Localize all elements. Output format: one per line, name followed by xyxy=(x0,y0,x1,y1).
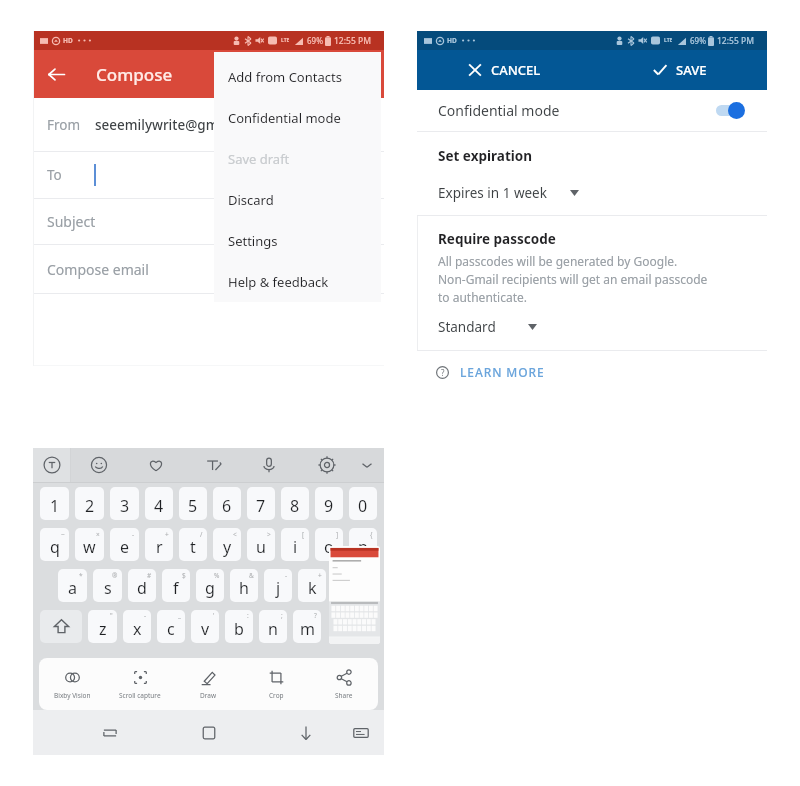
staticText: ; xyxy=(281,611,283,620)
staticText: w xyxy=(83,536,96,558)
button[interactable]: Help & feedback xyxy=(228,261,381,302)
staticText: 1 xyxy=(50,495,60,517)
staticText: d xyxy=(137,577,147,599)
button[interactable]: 0 xyxy=(349,487,377,520)
button[interactable]: Scroll capture xyxy=(106,658,174,710)
button[interactable]: 8 xyxy=(281,487,309,520)
staticText: Bixby Vision xyxy=(54,691,91,700)
button[interactable]: { xyxy=(349,528,377,561)
button[interactable]: 1 xyxy=(40,487,69,520)
staticText: Set expiration xyxy=(438,147,532,165)
staticText: All passcodes will be generated by Googl… xyxy=(438,253,678,269)
button[interactable]: square xyxy=(191,710,227,755)
button[interactable]: × xyxy=(75,528,104,561)
button[interactable]: gear xyxy=(310,448,344,482)
button[interactable]: Shift xyxy=(40,610,82,643)
button[interactable]: CANCEL xyxy=(417,50,592,90)
button[interactable]: 4 xyxy=(145,487,173,520)
button[interactable]: Expires in 1 week xyxy=(417,182,589,204)
button[interactable]: 6 xyxy=(213,487,241,520)
button[interactable]: $ xyxy=(162,569,190,602)
button[interactable]: ; xyxy=(259,610,287,643)
button[interactable]: ? xyxy=(293,610,321,643)
staticText: b xyxy=(234,618,244,640)
button[interactable]: 5 xyxy=(179,487,207,520)
button[interactable]: Settings xyxy=(228,220,381,261)
staticText: y xyxy=(223,536,232,558)
button[interactable]: mic xyxy=(252,448,286,482)
button[interactable]: [ xyxy=(281,528,309,561)
button[interactable]: + xyxy=(298,569,326,602)
staticText: [ xyxy=(302,530,305,539)
button[interactable]: chev xyxy=(350,448,384,482)
staticText: CANCEL xyxy=(491,61,541,79)
button[interactable]: SAVE xyxy=(592,50,767,90)
button[interactable]: : xyxy=(225,610,253,643)
button[interactable]: down xyxy=(288,710,324,755)
button[interactable]: Confidential mode xyxy=(228,97,381,138)
button[interactable]: < xyxy=(213,528,241,561)
button[interactable]: heart xyxy=(139,448,173,482)
button[interactable]: & xyxy=(230,569,258,602)
button[interactable]: 9 xyxy=(315,487,343,520)
button[interactable]: T xyxy=(35,448,69,482)
button[interactable]: ( xyxy=(332,569,360,602)
button[interactable]: / xyxy=(179,528,207,561)
button[interactable]: Share xyxy=(310,658,378,710)
button[interactable]: Confidential mode xyxy=(417,90,767,131)
button[interactable]: % xyxy=(196,569,224,602)
staticText: Non-Gmail recipients will get an email p… xyxy=(438,271,708,287)
button[interactable]: > xyxy=(247,528,275,561)
button[interactable]: ® xyxy=(93,569,122,602)
button[interactable]: # xyxy=(128,569,156,602)
staticText: & xyxy=(249,571,254,580)
staticText: 69% xyxy=(307,35,323,46)
button[interactable]: ~ xyxy=(40,528,69,561)
button[interactable]: Save draft xyxy=(228,138,381,179)
staticText: f xyxy=(173,577,179,599)
button[interactable]: Standard xyxy=(417,316,547,338)
button[interactable]: Bixby Vision xyxy=(39,658,106,710)
staticText: Draw xyxy=(200,691,217,700)
staticText: ® xyxy=(112,571,118,580)
staticText: : xyxy=(247,611,249,620)
button[interactable]: swap xyxy=(92,710,128,755)
button[interactable]: Crop xyxy=(242,658,310,710)
staticText: ? xyxy=(314,611,317,620)
button[interactable]: " xyxy=(88,610,117,643)
staticText: × xyxy=(96,530,100,539)
button[interactable]: smile xyxy=(82,448,116,482)
staticText: Require passcode xyxy=(438,230,556,248)
staticText: s xyxy=(104,577,112,599)
staticText: To xyxy=(47,166,62,184)
button[interactable]: Add from Contacts xyxy=(228,56,381,97)
button[interactable]: Draw xyxy=(174,658,242,710)
button[interactable]: 2 xyxy=(75,487,104,520)
button[interactable]: 7 xyxy=(247,487,275,520)
button[interactable]: * xyxy=(58,569,87,602)
button[interactable]: - xyxy=(264,569,292,602)
button[interactable]: ' xyxy=(191,610,219,643)
button[interactable]: + xyxy=(145,528,173,561)
staticText: Compose email xyxy=(47,260,149,279)
staticText: e xyxy=(120,536,130,558)
button[interactable]: 3 xyxy=(110,487,139,520)
staticText: Confidential mode xyxy=(438,101,560,120)
staticText: + xyxy=(318,571,322,580)
button[interactable]: _ xyxy=(157,610,185,643)
button[interactable]: - xyxy=(110,528,139,561)
staticText: ] xyxy=(336,530,339,539)
button[interactable]: ? xyxy=(417,361,553,383)
staticText: g xyxy=(205,577,215,599)
button[interactable]: ] xyxy=(315,528,343,561)
staticText: Compose xyxy=(96,63,173,86)
button[interactable]: pen xyxy=(197,448,231,482)
button[interactable]: Discard xyxy=(228,179,381,220)
button[interactable]: kb xyxy=(343,710,379,755)
staticText: l xyxy=(344,577,349,599)
staticText: _ xyxy=(178,611,181,620)
staticText: From xyxy=(47,116,81,134)
button[interactable]: Back xyxy=(33,50,79,98)
staticText: 9 xyxy=(324,495,334,517)
button[interactable]: - xyxy=(123,610,151,643)
